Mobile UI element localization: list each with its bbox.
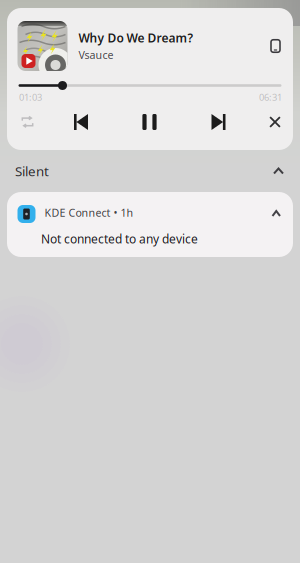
staticText: Vsauce <box>78 48 113 62</box>
staticText: Silent <box>15 162 49 180</box>
button[interactable]: Next track <box>185 109 252 135</box>
staticText: Not connected to any device <box>41 231 198 247</box>
button[interactable]: Switch output device <box>266 35 285 57</box>
button[interactable]: KDE Connect • 1h <box>7 192 293 257</box>
button[interactable]: Dismiss <box>252 109 293 135</box>
staticText: KDE Connect • 1h <box>44 205 133 220</box>
staticText: 06:31 <box>259 91 282 103</box>
button[interactable]: Pause <box>114 109 185 135</box>
button[interactable]: Previous track <box>48 109 114 135</box>
button[interactable]: Collapse silent notifications <box>268 162 289 179</box>
button[interactable]: Repeat <box>7 109 48 135</box>
staticText: 01:03 <box>19 91 42 103</box>
staticText: Why Do We Dream? <box>78 30 193 46</box>
